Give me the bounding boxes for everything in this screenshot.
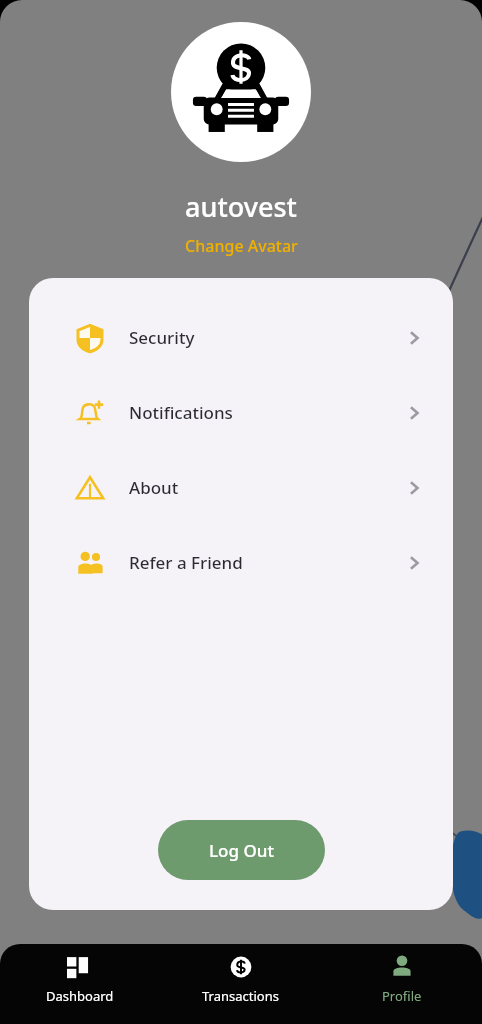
staticText: Transactions: [202, 987, 279, 1005]
staticText: Profile: [382, 987, 422, 1005]
staticText: Log Out: [209, 839, 274, 862]
staticText: Security: [129, 326, 195, 349]
button[interactable]: Change Avatar: [185, 235, 298, 257]
button[interactable]: Security: [29, 300, 453, 375]
staticText: Refer a Friend: [129, 551, 243, 574]
button[interactable]: Profile: [321, 954, 482, 1024]
button[interactable]: Refer a Friend: [29, 525, 453, 600]
staticText: autovest: [185, 188, 297, 225]
button[interactable]: Dashboard: [0, 954, 160, 1024]
button[interactable]: Avatar: [171, 22, 311, 162]
staticText: About: [129, 476, 179, 499]
button[interactable]: Log Out: [158, 820, 325, 880]
button[interactable]: About: [29, 450, 453, 525]
staticText: Change Avatar: [185, 235, 298, 257]
button[interactable]: Transactions: [160, 954, 321, 1024]
button[interactable]: Notifications: [29, 375, 453, 450]
staticText: Dashboard: [46, 987, 114, 1005]
staticText: Notifications: [129, 401, 233, 424]
